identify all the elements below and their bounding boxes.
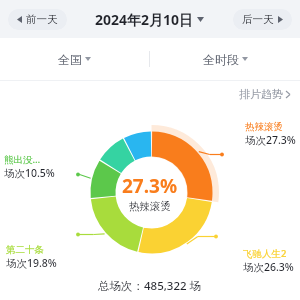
button[interactable]: 排片趋势: [229, 84, 300, 104]
button[interactable]: 后一天: [233, 9, 292, 30]
staticText: 全国: [58, 52, 82, 67]
staticText: 场次19.8%: [6, 256, 57, 270]
button[interactable]: 熊出没…: [4, 153, 55, 180]
staticText: 热辣滚烫: [129, 200, 171, 213]
staticText: 2024年2月10日: [95, 10, 194, 29]
button[interactable]: 全时段: [150, 38, 300, 80]
staticText: 排片趋势: [239, 87, 283, 101]
staticText: 场次27.3%: [245, 133, 296, 147]
button[interactable]: 飞驰人生2: [243, 247, 294, 274]
staticText: 场次26.3%: [243, 260, 294, 274]
staticText: 总场次：485,322 场: [98, 278, 202, 294]
staticText: 飞驰人生2: [243, 247, 287, 260]
button[interactable]: 前一天: [8, 9, 67, 30]
staticText: 熊出没…: [4, 153, 41, 166]
staticText: 第二十条: [6, 244, 44, 256]
staticText: 热辣滚烫: [245, 121, 283, 133]
staticText: 后一天: [242, 13, 274, 26]
staticText: 27.3%: [122, 173, 178, 199]
staticText: 场次10.5%: [4, 166, 55, 180]
button[interactable]: 全国: [0, 38, 149, 80]
button[interactable]: 热辣滚烫: [245, 121, 296, 147]
button[interactable]: 第二十条: [6, 244, 57, 270]
staticText: 全时段: [203, 52, 239, 67]
button[interactable]: 2024年2月10日: [95, 10, 204, 29]
staticText: 前一天: [26, 13, 58, 26]
